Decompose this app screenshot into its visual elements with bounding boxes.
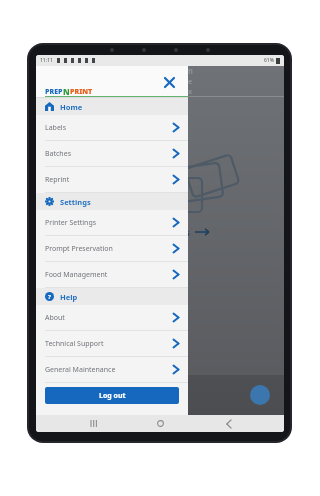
staticText: 61% — [264, 57, 274, 64]
button[interactable]: Technical Support — [36, 331, 188, 356]
staticText: Technical Support — [45, 339, 104, 349]
staticText: Batches — [45, 149, 71, 159]
button[interactable]: Reprint — [36, 167, 188, 192]
staticText: Help — [60, 292, 78, 302]
staticText: Labels — [45, 123, 67, 133]
button[interactable]: Home — [36, 98, 188, 115]
button[interactable]: ? — [36, 288, 188, 305]
button[interactable]: Printer Settings — [36, 210, 188, 235]
button[interactable]: Batches — [36, 141, 188, 166]
staticText: General Maintenance — [45, 365, 116, 375]
staticText: Home — [60, 102, 83, 112]
button[interactable]: General Maintenance — [36, 357, 188, 382]
staticText: Batches — [154, 226, 190, 238]
staticText: About — [45, 313, 65, 323]
button[interactable]: Settings — [36, 193, 188, 210]
staticText: Prompt Preservation — [45, 244, 113, 254]
button[interactable]: Close menu — [160, 73, 178, 91]
staticText: Settings — [60, 197, 91, 207]
staticText: N — [63, 86, 70, 97]
button[interactable]: Add — [250, 385, 270, 405]
staticText: Food Management — [45, 270, 108, 280]
button[interactable]: About — [36, 305, 188, 330]
button[interactable]: Labels — [36, 115, 188, 140]
staticText: ? — [48, 293, 51, 301]
button[interactable]: Home — [149, 415, 171, 432]
button[interactable]: Recents — [82, 415, 104, 432]
button[interactable]: Prompt Preservation — [36, 236, 188, 261]
staticText: PRINT — [70, 87, 93, 97]
button[interactable]: Log out — [45, 387, 179, 404]
staticText: PREP — [45, 87, 63, 97]
button[interactable]: Food Management — [36, 262, 188, 287]
staticText: Printer Settings — [45, 218, 97, 228]
staticText: Reprint — [45, 175, 70, 185]
button[interactable]: Back — [217, 415, 239, 432]
staticText: Log out — [99, 391, 126, 401]
staticText: 11:11 — [40, 57, 53, 64]
